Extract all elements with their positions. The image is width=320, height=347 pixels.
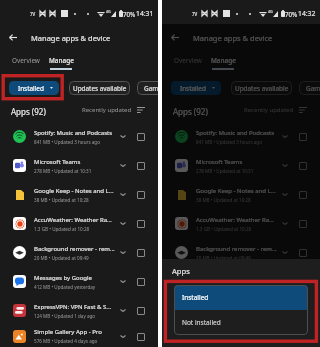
staticText: 70% xyxy=(123,10,136,18)
button[interactable]: Updates available xyxy=(69,81,130,95)
button[interactable]: Expand xyxy=(117,160,128,171)
staticText: Updates available xyxy=(73,84,127,93)
button[interactable]: Expand xyxy=(279,131,290,142)
button[interactable]: Installed xyxy=(174,285,308,310)
staticText: Installed xyxy=(18,84,44,93)
staticText: 412 MB • Updated yesterday xyxy=(196,284,258,290)
button[interactable]: Microsoft Teams xyxy=(162,151,320,180)
staticText: 412 MB • Updated yesterday xyxy=(34,284,96,290)
button[interactable]: Select app xyxy=(297,331,308,342)
button[interactable]: Recently updated xyxy=(244,106,307,114)
staticText: 7V xyxy=(30,11,36,17)
button[interactable]: Google Keep - Notes and L... xyxy=(0,180,158,209)
button[interactable]: Back xyxy=(4,28,22,46)
button[interactable]: Background remover - rem... xyxy=(162,238,320,267)
staticText: Background remover - rem... xyxy=(196,245,277,253)
staticText: Overview xyxy=(174,56,202,65)
staticText: AccuWeather: Weather Rad... xyxy=(34,216,115,224)
button[interactable]: Manage xyxy=(47,52,75,68)
staticText: Spotify: Music and Podcasts xyxy=(34,129,113,137)
staticText: Background remover - rem... xyxy=(34,245,115,253)
button[interactable]: Select app xyxy=(135,218,146,229)
staticText: Apps (92) xyxy=(11,106,46,117)
button[interactable]: Google Keep - Notes and L... xyxy=(162,180,320,209)
button[interactable]: Expand xyxy=(279,276,290,287)
staticText: Manage apps & device xyxy=(31,33,111,43)
button[interactable]: Select app xyxy=(297,160,308,171)
button[interactable]: Expand xyxy=(117,131,128,142)
button[interactable]: Games xyxy=(137,81,177,95)
staticText: 38 MB • Updated at 10:28 xyxy=(196,197,251,203)
staticText: Installed xyxy=(182,293,209,302)
button[interactable]: Select app xyxy=(297,247,308,258)
staticText: 4G xyxy=(268,9,273,14)
button[interactable]: Background remover - rem... xyxy=(0,238,158,267)
button[interactable]: Spotify: Music and Podcasts xyxy=(0,122,158,151)
button[interactable]: Installed xyxy=(171,81,221,95)
staticText: Manage apps & device xyxy=(193,33,273,43)
staticText: Installed xyxy=(180,84,206,93)
button[interactable]: Select app xyxy=(135,247,146,258)
button[interactable]: AccuWeather: Weather Rad... xyxy=(162,209,320,238)
staticText: 841 MB • Updated 3 hours ago xyxy=(196,139,262,145)
staticText: Manage xyxy=(211,56,236,65)
button[interactable]: Expand xyxy=(117,276,128,287)
button[interactable]: Messages by Google xyxy=(0,267,158,296)
button[interactable]: Simple Gallery App - Pro xyxy=(162,325,320,347)
button[interactable]: Microsoft Teams xyxy=(0,151,158,180)
button[interactable]: ExpressVPN: VPN Fast & S... xyxy=(162,296,320,325)
button[interactable]: Expand xyxy=(117,218,128,229)
button[interactable]: Games xyxy=(299,81,320,95)
button[interactable]: ExpressVPN: VPN Fast & S... xyxy=(0,296,158,325)
staticText: ExpressVPN: VPN Fast & S... xyxy=(196,303,274,311)
button[interactable]: Expand xyxy=(279,305,290,316)
button[interactable]: Select app xyxy=(297,189,308,200)
staticText: 124 MB • Updated 1 day ago xyxy=(34,313,96,319)
button[interactable]: Manage xyxy=(209,52,237,68)
button[interactable]: Expand xyxy=(279,247,290,258)
button[interactable]: Expand xyxy=(279,160,290,171)
staticText: Games xyxy=(144,84,165,93)
button[interactable]: Not installed xyxy=(174,310,308,335)
button[interactable]: Expand xyxy=(117,189,128,200)
staticText: Games xyxy=(306,84,320,93)
staticText: Microsoft Teams xyxy=(34,158,81,166)
staticText: 7V xyxy=(192,11,198,17)
button[interactable]: Back xyxy=(166,28,184,46)
button[interactable]: Expand xyxy=(117,247,128,258)
button[interactable]: AccuWeather: Weather Rad... xyxy=(0,209,158,238)
staticText: 1.3 GB • Updated at 10:28 xyxy=(196,226,252,232)
staticText: 20 MB • Updated at 09:49 xyxy=(34,255,89,261)
button[interactable]: Select app xyxy=(297,276,308,287)
button[interactable]: Select app xyxy=(135,160,146,171)
button[interactable]: Overview xyxy=(170,52,206,68)
button[interactable]: Select app xyxy=(135,131,146,142)
staticText: AccuWeather: Weather Rad... xyxy=(196,216,277,224)
button[interactable]: Select app xyxy=(135,189,146,200)
staticText: 38 MB • Updated at 10:28 xyxy=(34,197,89,203)
button[interactable]: Spotify: Music and Podcasts xyxy=(162,122,320,151)
button[interactable]: Select app xyxy=(297,218,308,229)
staticText: Google Keep - Notes and L... xyxy=(34,187,114,195)
button[interactable]: Select app xyxy=(135,305,146,316)
staticText: Recently updated xyxy=(244,106,294,114)
staticText: 278 MB • Updated at 10:31 xyxy=(34,168,92,174)
button[interactable]: Overview xyxy=(8,52,44,68)
button[interactable]: Select app xyxy=(135,276,146,287)
staticText: 278 MB • Updated at 10:31 xyxy=(196,168,254,174)
button[interactable]: Simple Gallery App - Pro xyxy=(0,325,158,347)
button[interactable]: Expand xyxy=(279,331,290,342)
button[interactable]: Expand xyxy=(279,218,290,229)
button[interactable]: Select app xyxy=(297,305,308,316)
staticText: 14:32 xyxy=(298,9,316,18)
button[interactable]: Select app xyxy=(135,331,146,342)
button[interactable]: Updates available xyxy=(231,81,292,95)
button[interactable]: Installed xyxy=(9,81,59,95)
button[interactable]: Expand xyxy=(279,189,290,200)
button[interactable]: Expand xyxy=(117,305,128,316)
button[interactable]: Recently updated xyxy=(82,106,145,114)
button[interactable]: Expand xyxy=(117,331,128,342)
button[interactable]: Select app xyxy=(297,131,308,142)
button[interactable]: Messages by Google xyxy=(162,267,320,296)
